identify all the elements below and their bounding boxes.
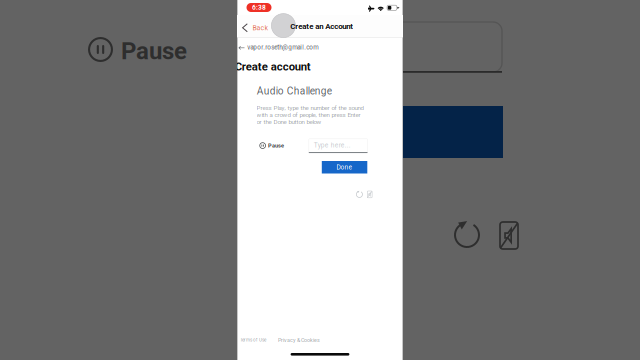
staticText: Audio Challenge xyxy=(257,85,332,97)
button[interactable]: Terms of Use xyxy=(239,336,267,344)
staticText: Back xyxy=(252,24,268,32)
button[interactable]: Reload challenge xyxy=(354,189,364,199)
staticText: Pause xyxy=(121,37,187,65)
button[interactable]: Type here... xyxy=(309,138,367,153)
button[interactable]: Privacy & Cookies xyxy=(277,336,321,344)
staticText: 6:38 xyxy=(252,4,266,11)
staticText: or the Done button below xyxy=(256,118,321,125)
button[interactable]: Pause xyxy=(257,140,286,151)
staticText: Type here... xyxy=(314,141,351,149)
staticText: Pause xyxy=(268,142,284,149)
button[interactable]: Done xyxy=(322,161,367,173)
staticText: Press Play, type the number of the sound xyxy=(256,104,363,112)
staticText: vapor.roseth@gmail.com xyxy=(247,44,318,51)
staticText: Terms of Use xyxy=(240,337,266,343)
staticText: Create account xyxy=(235,60,311,73)
staticText: one xyxy=(303,118,360,159)
staticText: Create an Account xyxy=(290,22,353,31)
staticText: with a crowd of people, then press Enter xyxy=(256,111,360,118)
staticText: Privacy & Cookies xyxy=(278,337,320,343)
button[interactable]: Back xyxy=(238,19,272,37)
staticText: Done xyxy=(337,163,353,171)
button[interactable]: Audio off xyxy=(366,189,374,199)
